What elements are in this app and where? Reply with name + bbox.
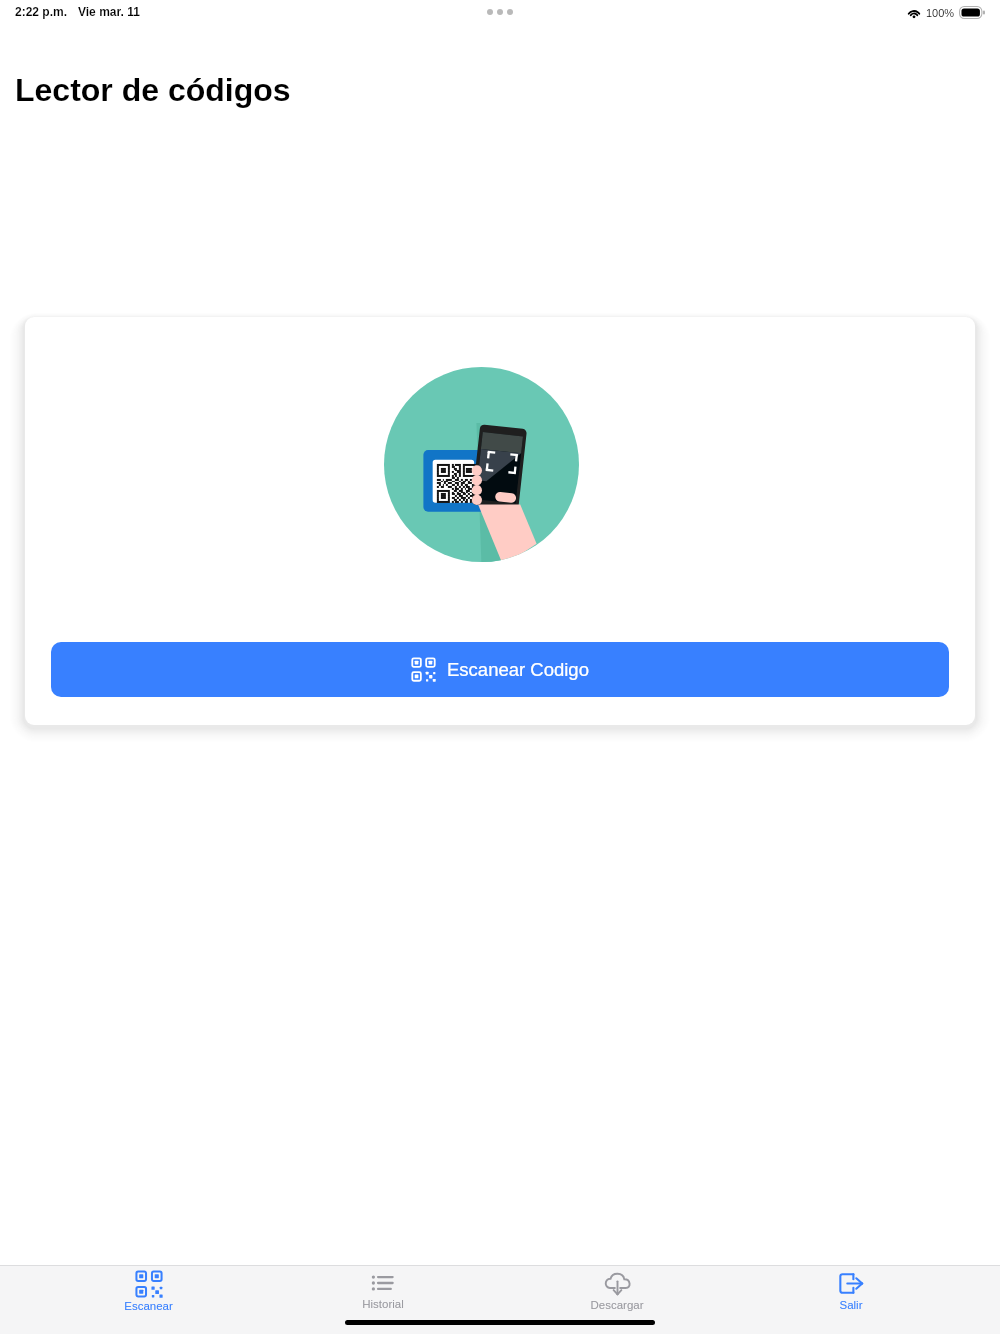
button[interactable]: Escanear	[31, 1266, 266, 1334]
staticText: Vie mar. 11	[78, 5, 140, 18]
staticText: 2:22 p.m.	[15, 5, 68, 18]
button[interactable]: Escanear Codigo	[51, 642, 949, 697]
staticText: Lector de códigos	[15, 72, 291, 108]
staticText: Historial	[362, 1298, 404, 1311]
staticText: 100%	[926, 7, 955, 19]
button[interactable]: Descargar	[500, 1266, 734, 1334]
staticText: Escanear	[124, 1300, 173, 1313]
staticText: Salir	[839, 1299, 863, 1312]
button[interactable]: Salir	[734, 1266, 968, 1334]
staticText: Descargar	[590, 1299, 644, 1312]
button[interactable]: Historial	[266, 1266, 500, 1334]
staticText: Escanear Codigo	[447, 659, 589, 680]
